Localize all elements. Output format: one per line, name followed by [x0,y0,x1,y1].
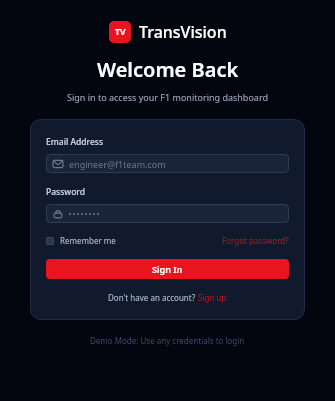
staticText: Sign in to access your F1 monitoring das… [67,91,268,103]
staticText: Sign In [152,263,183,275]
staticText: Sign up [198,292,227,303]
staticText: TV [115,26,126,38]
staticText: Demo Mode: Use any credentials to login [90,335,245,346]
staticText: Email Address [46,136,104,148]
staticText: Don't have an account? [108,292,198,303]
button[interactable]: Forgot password? [222,235,289,246]
button[interactable]: engineer@f1team.com [46,154,289,173]
staticText: Welcome Back [97,56,239,83]
staticText: Password [46,186,86,198]
button[interactable]: Remember me [46,235,116,246]
staticText: engineer@f1team.com [69,158,166,170]
button[interactable] [46,204,289,223]
staticText: Remember me [60,235,116,246]
staticText: Forgot password? [222,235,289,246]
button[interactable]: Sign up [198,292,227,303]
staticText: TransVision [139,21,227,43]
button[interactable]: TV [109,21,227,43]
button[interactable]: Sign In [46,259,289,279]
